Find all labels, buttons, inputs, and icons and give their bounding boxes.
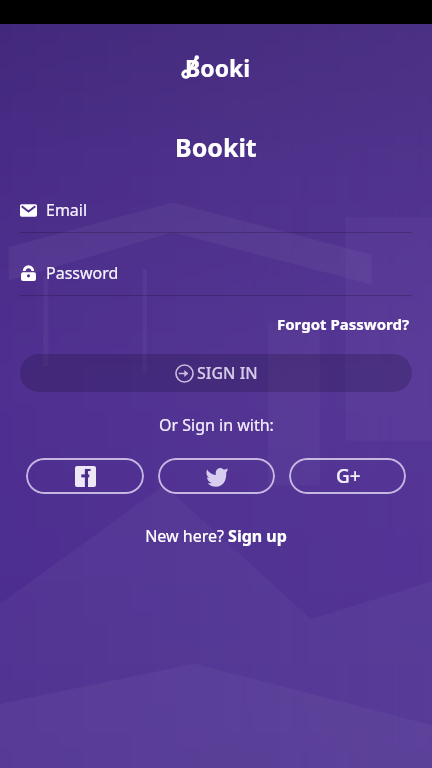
staticText: Email (46, 199, 88, 221)
button[interactable]: Sign in with Google Plus (289, 458, 406, 494)
staticText: Forgot Password? (277, 314, 410, 334)
button[interactable]: Password (20, 251, 412, 296)
staticText: Or Sign in with: (159, 414, 274, 436)
button[interactable]: Sign in with Twitter (158, 458, 275, 494)
staticText: Bookit (175, 130, 257, 164)
button[interactable]: New here? Sign up (141, 522, 291, 550)
button[interactable]: Sign in with Facebook (26, 458, 144, 494)
staticText: Password (46, 262, 119, 284)
button[interactable]: Email (20, 188, 412, 233)
button[interactable]: Forgot Password? (275, 310, 412, 338)
staticText: SIGN IN (197, 362, 258, 384)
staticText: G+ (336, 463, 361, 489)
staticText: New here? Sign up (145, 525, 287, 547)
button[interactable]: SIGN IN (20, 354, 412, 392)
staticText: Bookit (185, 52, 255, 82)
